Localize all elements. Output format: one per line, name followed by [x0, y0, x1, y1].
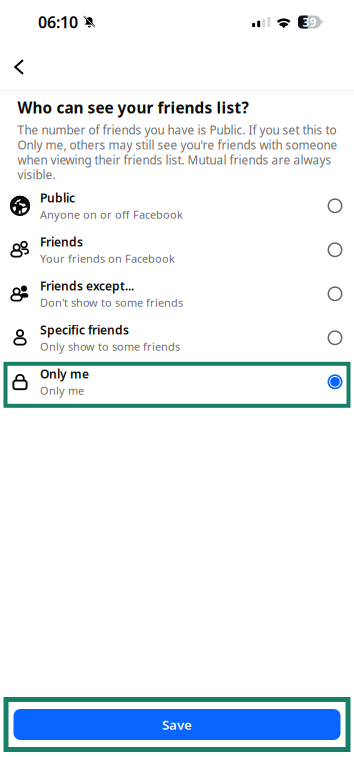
button[interactable]: Specific friends [0, 316, 354, 360]
button[interactable]: Public [0, 184, 354, 228]
button[interactable]: Friends except... [0, 272, 354, 316]
staticText: 06:10 [38, 11, 78, 33]
staticText: Friends except... [40, 278, 134, 294]
staticText: Friends [40, 234, 83, 250]
button[interactable]: Only me [0, 360, 354, 404]
staticText: Your friends on Facebook [40, 251, 175, 266]
staticText: Only show to some friends [40, 339, 180, 354]
staticText: Anyone on or off Facebook [40, 207, 183, 222]
staticText: Public [40, 190, 75, 206]
button[interactable]: Save [3, 697, 350, 752]
staticText: The number of friends you have is Public… [17, 122, 337, 183]
staticText: Only me [40, 366, 89, 382]
button[interactable]: Friends [0, 228, 354, 272]
staticText: Don't show to some friends [40, 295, 183, 310]
staticText: 39 [302, 14, 316, 30]
button[interactable]: Back [2, 50, 36, 84]
staticText: Specific friends [40, 322, 129, 338]
staticText: Who can see your friends list? [17, 97, 248, 118]
staticText: Save [162, 715, 192, 734]
staticText: Only me [40, 383, 84, 398]
